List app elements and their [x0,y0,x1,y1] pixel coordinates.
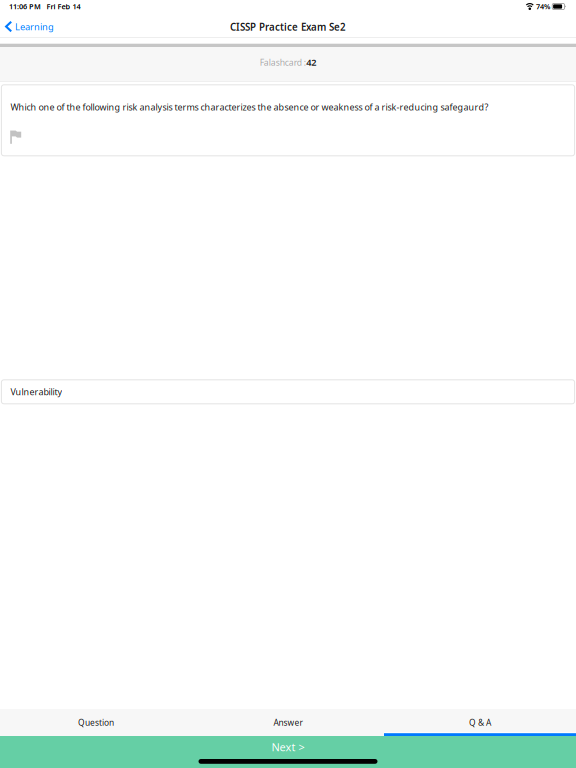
staticText: Learning [15,20,54,33]
staticText: 74% [536,1,550,11]
staticText: Vulnerability [10,386,62,398]
button[interactable]: Vulnerability [0,380,576,404]
staticText: Q & A [469,717,491,728]
staticText: 42 [306,56,316,68]
staticText: Answer [273,717,302,728]
button[interactable]: Learning [0,17,60,37]
staticText: Which one of the following risk analysis… [10,101,488,113]
button[interactable]: Q & A [384,709,576,736]
staticText: Fri Feb 14 [46,1,80,11]
staticText: Falashcard : [260,57,306,68]
button[interactable]: Answer [192,709,384,736]
button[interactable]: Flag this question [1,130,21,156]
staticText: Question [78,717,114,728]
staticText: CISSP Practice Exam Se2 [230,20,346,33]
staticText: 11:06 PM [9,1,41,11]
button[interactable]: Next > [0,736,576,768]
staticText: Next > [271,739,304,754]
button[interactable]: Question [0,709,192,736]
